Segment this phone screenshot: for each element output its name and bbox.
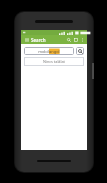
staticText: mobil [38,49,49,54]
staticText: Nincs találat [43,59,65,64]
button[interactable]: mobil [24,47,74,55]
button[interactable]: Nincs találat [24,57,84,66]
button[interactable]: More options [79,37,85,43]
button[interactable]: Open navigation menu [23,36,30,43]
button[interactable]: Search [76,47,84,55]
button[interactable]: Search [65,36,72,43]
staticText: Search [31,37,46,43]
staticText: angol [49,49,60,54]
button[interactable]: Saved [72,36,79,43]
